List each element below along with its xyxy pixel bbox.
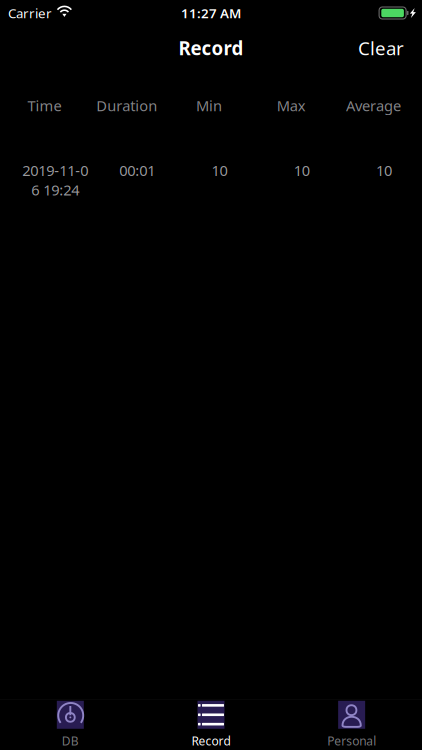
staticText: Carrier [8, 4, 52, 22]
staticText: 2019-11-0 6 19:24 [22, 160, 88, 199]
staticText: Personal [327, 733, 376, 749]
staticText: Duration [96, 96, 157, 115]
staticText: Clear [358, 36, 404, 60]
staticText: Max [277, 96, 306, 115]
staticText: Record [178, 36, 243, 60]
staticText: 10 [294, 160, 310, 180]
staticText: Average [346, 96, 401, 115]
staticText: Time [28, 96, 62, 115]
staticText: DB [62, 733, 79, 749]
button[interactable]: Clear [340, 26, 422, 70]
button[interactable]: Record [141, 699, 281, 750]
staticText: 00:01 [119, 160, 155, 180]
staticText: 11:27 AM [181, 4, 241, 22]
button[interactable]: Personal [281, 699, 422, 750]
button[interactable]: DB [0, 699, 141, 750]
button[interactable]: 2019-11-0 6 19:24 [0, 124, 422, 211]
staticText: 10 [376, 160, 392, 180]
staticText: Min [196, 96, 222, 115]
staticText: Record [191, 733, 230, 749]
staticText: 10 [211, 160, 227, 180]
